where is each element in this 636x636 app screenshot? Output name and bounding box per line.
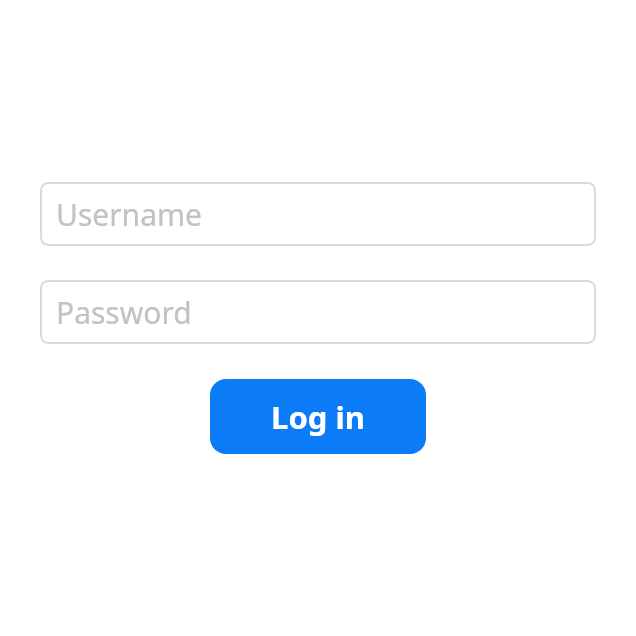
- button[interactable]: Log in: [210, 379, 426, 454]
- button[interactable]: Password: [40, 280, 596, 344]
- staticText: Username: [56, 194, 202, 235]
- staticText: Password: [56, 292, 192, 333]
- button[interactable]: Username: [40, 182, 596, 246]
- staticText: Log in: [271, 396, 365, 438]
